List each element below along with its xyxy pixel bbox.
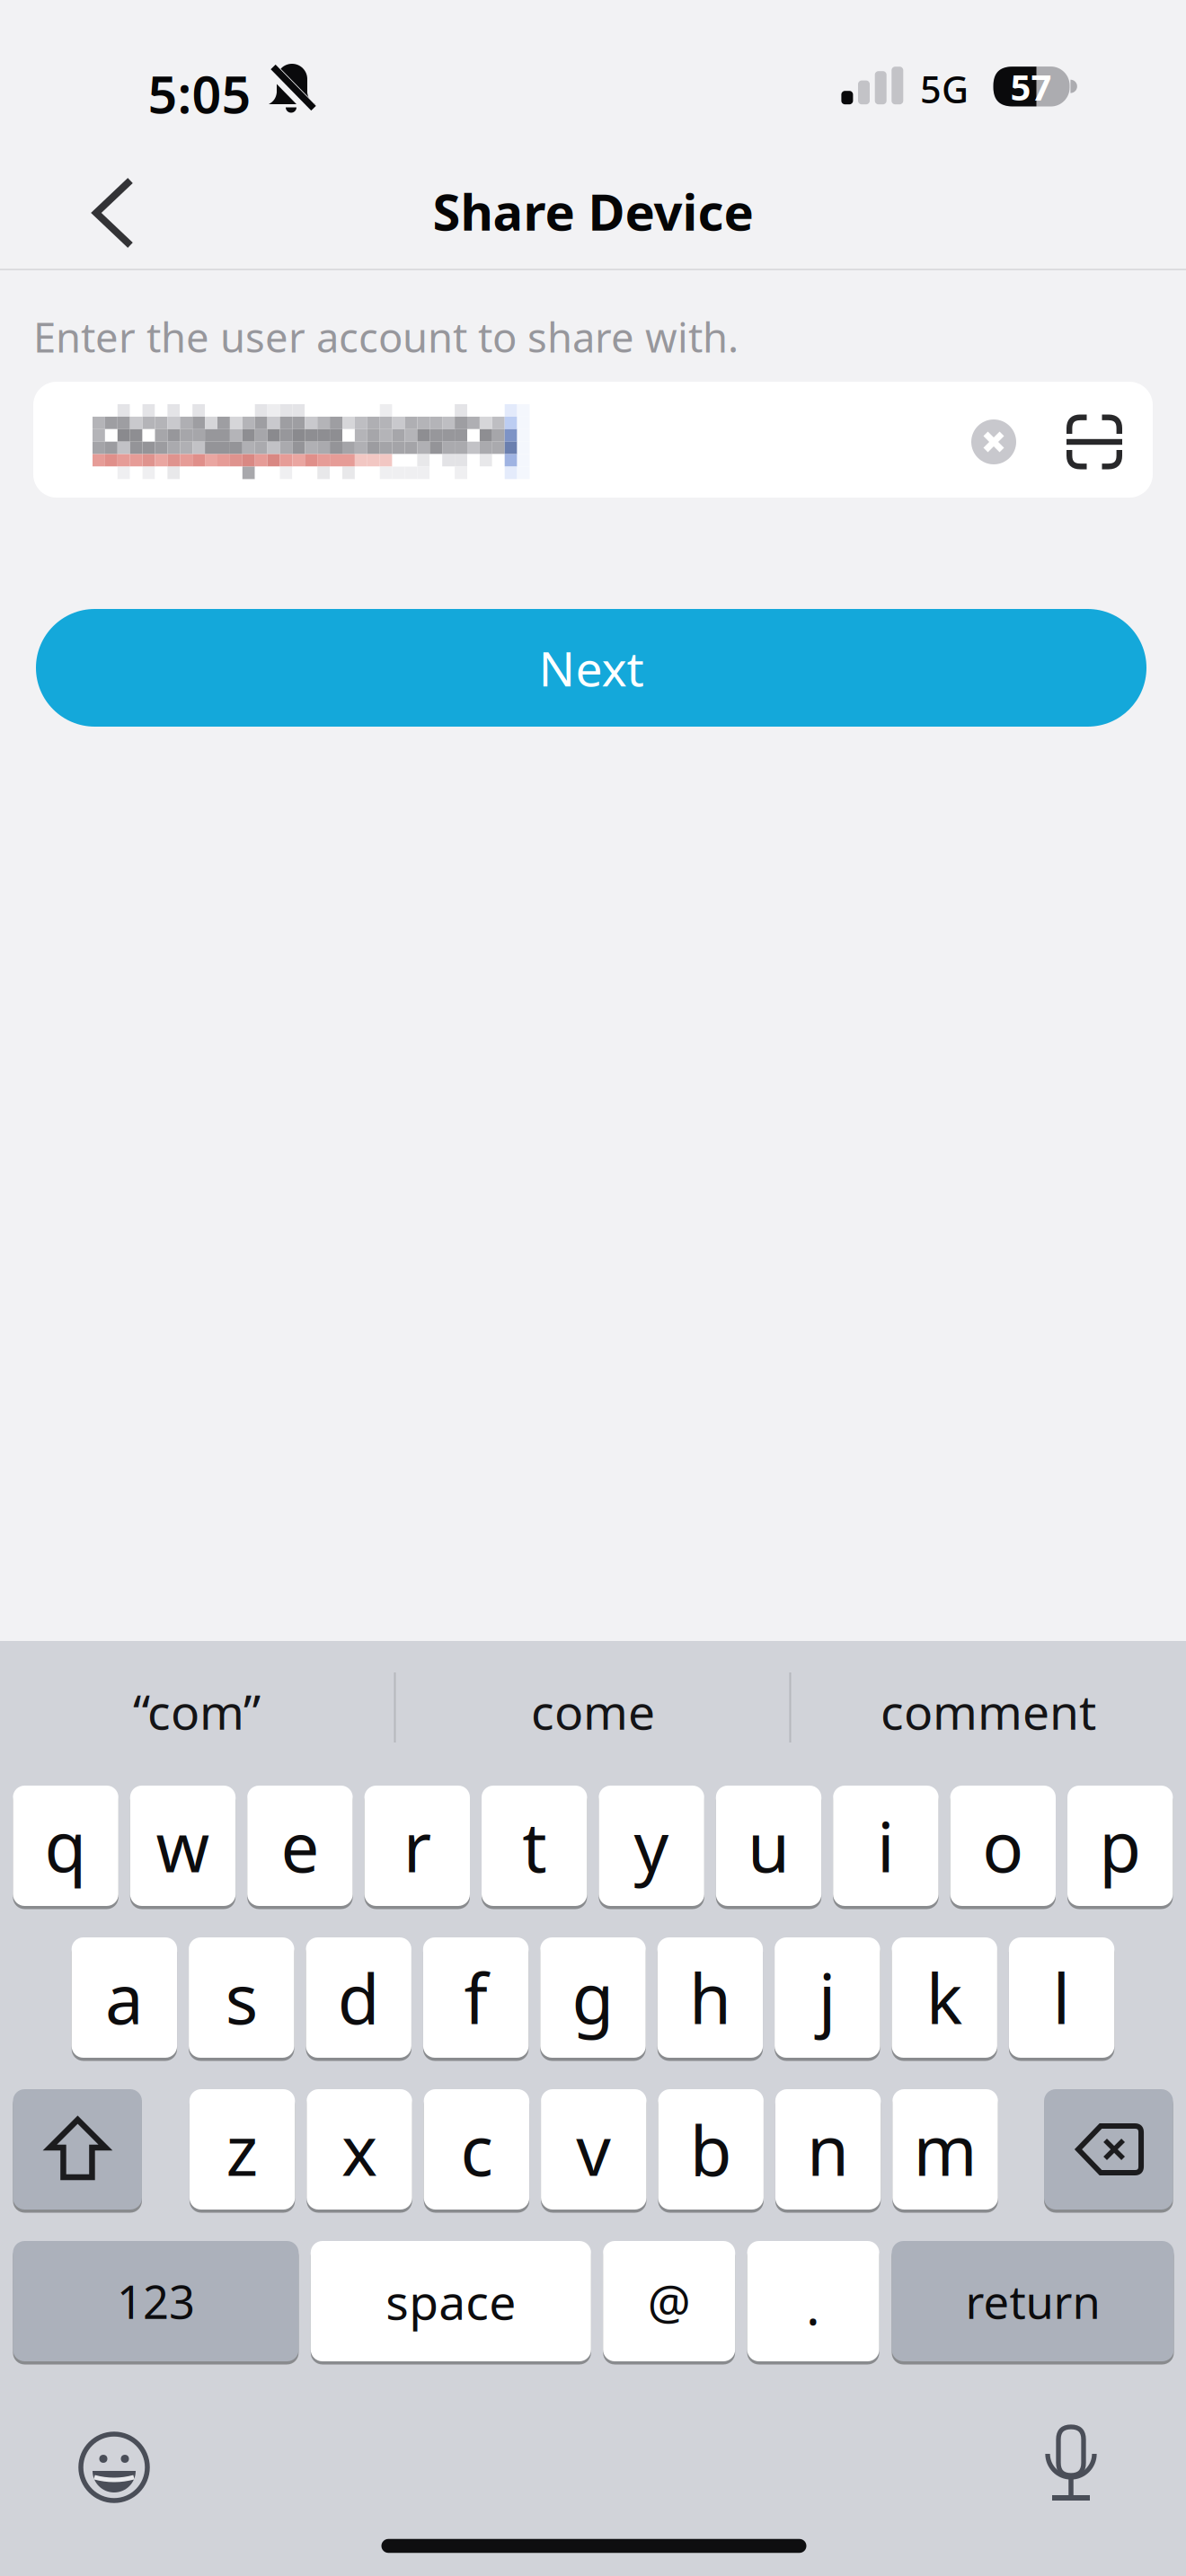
staticText: r <box>403 1800 431 1891</box>
button[interactable] <box>1067 415 1122 469</box>
button[interactable]: 123 <box>13 2239 299 2363</box>
button[interactable]: x <box>307 2087 412 2211</box>
staticText: j <box>818 1952 836 2043</box>
staticText: k <box>926 1952 963 2043</box>
button[interactable] <box>13 2087 142 2211</box>
button[interactable]: “com” <box>133 1679 261 1743</box>
staticText: u <box>748 1800 790 1891</box>
button[interactable]: comment <box>881 1679 1096 1743</box>
staticText: 123 <box>117 2271 195 2331</box>
staticText: return <box>965 2271 1100 2331</box>
button[interactable]: Next <box>36 609 1146 727</box>
staticText: 5G <box>920 64 969 114</box>
button[interactable] <box>91 177 136 249</box>
staticText: v <box>576 2104 611 2195</box>
button[interactable]: s <box>189 1936 294 2060</box>
button[interactable]: p <box>1067 1784 1173 1908</box>
staticText: Enter the user account to share with. <box>33 310 739 364</box>
button[interactable] <box>74 2427 155 2508</box>
staticText: a <box>105 1952 144 2043</box>
staticText: Share Device <box>433 178 753 244</box>
staticText: f <box>464 1952 488 2043</box>
button[interactable]: z <box>189 2087 295 2211</box>
button[interactable]: n <box>775 2087 881 2211</box>
staticText: z <box>226 2104 258 2195</box>
staticText: s <box>225 1952 258 2043</box>
button[interactable]: v <box>541 2087 646 2211</box>
staticText: 57 <box>1010 63 1052 110</box>
button[interactable] <box>1044 2087 1173 2211</box>
staticText: come <box>531 1679 655 1743</box>
staticText: g <box>572 1952 614 2043</box>
button[interactable]: u <box>716 1784 821 1908</box>
staticText: t <box>522 1800 546 1891</box>
staticText: 5:05 <box>148 59 251 128</box>
button[interactable]: d <box>306 1936 411 2060</box>
staticText: p <box>1099 1800 1141 1891</box>
button[interactable]: e <box>247 1784 353 1908</box>
button[interactable] <box>971 419 1016 464</box>
button[interactable]: b <box>658 2087 764 2211</box>
staticText: e <box>281 1800 319 1891</box>
button[interactable]: h <box>657 1936 763 2060</box>
staticText: m <box>913 2104 977 2195</box>
button[interactable]: y <box>599 1784 704 1908</box>
button[interactable]: space <box>311 2239 591 2363</box>
staticText: q <box>45 1800 87 1891</box>
staticText: space <box>386 2269 516 2333</box>
button[interactable]: i <box>833 1784 939 1908</box>
button[interactable]: a <box>72 1936 177 2060</box>
staticText: n <box>807 2104 849 2195</box>
button[interactable] <box>1035 2418 1107 2508</box>
button[interactable]: return <box>892 2239 1174 2363</box>
button[interactable]: . <box>747 2239 879 2363</box>
staticText: i <box>877 1800 895 1891</box>
staticText: h <box>689 1952 731 2043</box>
staticText: comment <box>881 1679 1096 1743</box>
staticText: w <box>156 1800 210 1891</box>
staticText: o <box>982 1800 1024 1891</box>
staticText: . <box>806 2270 820 2340</box>
staticText: Next <box>539 636 644 700</box>
staticText: b <box>690 2104 732 2195</box>
button[interactable]: m <box>892 2087 998 2211</box>
staticText: x <box>341 2104 377 2195</box>
button[interactable]: w <box>130 1784 236 1908</box>
staticText: l <box>1053 1952 1071 2043</box>
button[interactable]: q <box>13 1784 118 1908</box>
button[interactable]: f <box>423 1936 529 2060</box>
staticText: y <box>634 1800 669 1891</box>
staticText: “com” <box>133 1679 261 1743</box>
button[interactable]: l <box>1009 1936 1114 2060</box>
button[interactable]: k <box>892 1936 997 2060</box>
staticText: @ <box>648 2269 691 2333</box>
button[interactable]: g <box>540 1936 646 2060</box>
button[interactable]: r <box>364 1784 470 1908</box>
button[interactable]: j <box>775 1936 880 2060</box>
staticText: c <box>460 2104 493 2195</box>
button[interactable]: t <box>482 1784 587 1908</box>
button[interactable]: come <box>531 1679 655 1743</box>
button[interactable]: @ <box>603 2239 735 2363</box>
staticText: d <box>338 1952 380 2043</box>
button[interactable] <box>33 382 1153 498</box>
button[interactable]: o <box>950 1784 1056 1908</box>
button[interactable]: c <box>424 2087 529 2211</box>
